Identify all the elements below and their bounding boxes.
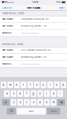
button[interactable]: ⇧	[2, 99, 10, 106]
button[interactable]: y	[34, 81, 40, 88]
staticText: ⌫	[60, 101, 63, 104]
staticText: User Name	[2, 56, 13, 58]
button[interactable]: return	[47, 108, 60, 114]
staticText: 100%	[56, 1, 61, 3]
staticText: g	[32, 92, 34, 95]
staticText: d	[19, 92, 21, 95]
staticText: ••••••••••••••••••	[21, 32, 39, 34]
staticText: c	[26, 101, 28, 104]
staticText: Cancel	[2, 6, 12, 9]
staticText: u	[42, 83, 44, 86]
staticText: p	[62, 83, 64, 86]
staticText: e	[16, 83, 18, 86]
staticText: j	[46, 92, 47, 95]
staticText: Host Name	[2, 18, 13, 20]
button[interactable]: User Name	[0, 54, 67, 61]
button[interactable]: t	[27, 81, 33, 88]
button[interactable]: b	[37, 99, 43, 106]
button[interactable]: u	[41, 81, 46, 88]
button[interactable]: h	[37, 90, 43, 97]
staticText: johnappleseed@quicksilver.com	[21, 25, 47, 27]
button[interactable]: User Name	[0, 23, 67, 29]
button[interactable]: l	[57, 90, 63, 97]
button[interactable]: Password	[0, 61, 67, 67]
staticText: i	[50, 83, 51, 86]
staticText: INCOMING MAIL SERVER	[2, 12, 24, 15]
staticText: t	[30, 83, 31, 86]
staticText: m	[52, 101, 54, 104]
button[interactable]: ⌫	[57, 99, 65, 106]
staticText: o	[56, 83, 58, 86]
button[interactable]: Password	[0, 29, 67, 36]
staticText: Password	[2, 63, 11, 65]
button[interactable]: p	[61, 81, 66, 88]
button[interactable]: g	[31, 90, 36, 97]
staticText: Host Name	[2, 49, 13, 51]
staticText: space	[29, 110, 34, 112]
button[interactable]: k	[51, 90, 56, 97]
staticText: smtp.quicksilvermail-example.com	[21, 49, 51, 51]
button[interactable]: w	[7, 81, 13, 88]
button[interactable]: Cancel	[1, 5, 12, 10]
staticText: return	[50, 110, 56, 112]
button[interactable]: c	[24, 99, 30, 106]
staticText: r	[23, 83, 24, 86]
staticText: New Account	[26, 6, 40, 9]
staticText: a	[6, 92, 7, 95]
button[interactable]: r	[21, 81, 26, 88]
staticText: Password	[2, 32, 11, 34]
staticText: mail.quicksilvermail-example.com	[21, 18, 49, 20]
button[interactable]: s	[11, 90, 16, 97]
button[interactable]: x	[17, 99, 23, 106]
button[interactable]: space	[17, 108, 46, 114]
button[interactable]: n	[44, 99, 50, 106]
staticText: 12:30 PM	[32, 1, 38, 3]
button[interactable]: e	[14, 81, 20, 88]
staticText: ●●○○○ Carrier ⇅	[1, 1, 13, 3]
button[interactable]: f	[24, 90, 30, 97]
staticText: x	[20, 101, 21, 104]
button[interactable]: Host Name	[0, 16, 67, 23]
staticText: ⇧	[4, 101, 7, 104]
button[interactable]: i	[47, 81, 53, 88]
staticText: b	[39, 101, 41, 104]
button[interactable]: a	[4, 90, 10, 97]
staticText: OUTGOING MAIL SERVER	[2, 43, 23, 46]
button[interactable]: v	[31, 99, 36, 106]
staticText: 123	[10, 110, 13, 112]
button[interactable]: q	[1, 81, 6, 88]
staticText: y	[36, 83, 37, 86]
staticText: Next	[59, 6, 65, 9]
staticText: johnappleseed@quicksilver.com	[21, 56, 47, 58]
button[interactable]: o	[54, 81, 60, 88]
button[interactable]: j	[44, 90, 50, 97]
button[interactable]: Host Name	[0, 47, 67, 54]
button[interactable]: 123	[7, 108, 16, 114]
staticText: v	[33, 101, 34, 104]
button[interactable]: Next	[58, 5, 65, 10]
staticText: ••••••••••••••••••	[21, 63, 39, 65]
staticText: q	[2, 83, 4, 86]
button[interactable]: z	[11, 99, 16, 106]
staticText: User Name	[2, 25, 13, 27]
staticText: z	[13, 101, 14, 104]
button[interactable]: d	[17, 90, 23, 97]
staticText: f	[26, 92, 27, 95]
staticText: l	[60, 92, 61, 95]
staticText: n	[46, 101, 48, 104]
staticText: s	[13, 92, 14, 95]
staticText: k	[53, 92, 54, 95]
staticText: h	[39, 92, 41, 95]
button[interactable]: m	[51, 99, 56, 106]
staticText: w	[9, 83, 11, 86]
